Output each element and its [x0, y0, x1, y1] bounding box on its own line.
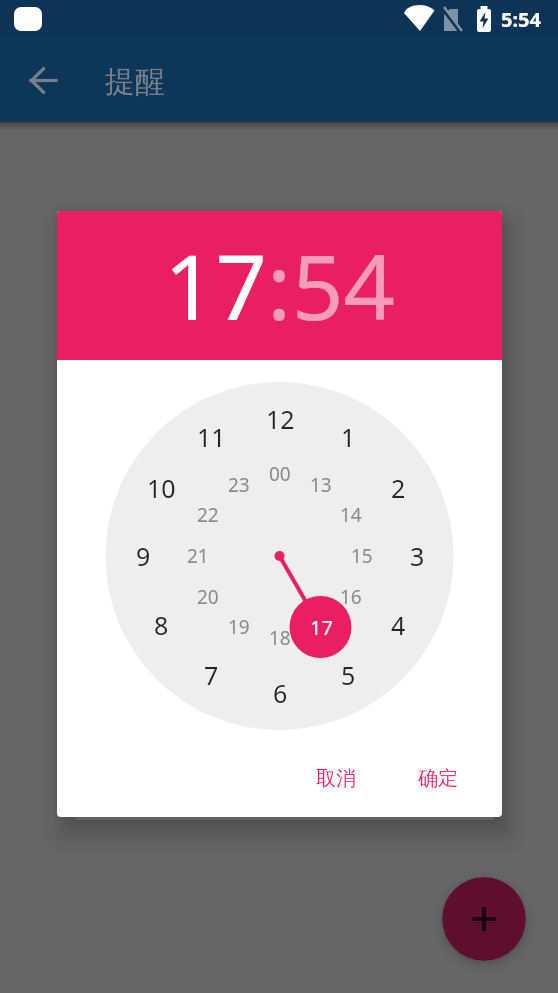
staticText: 21: [187, 543, 209, 569]
staticText: 1: [341, 420, 356, 454]
button[interactable]: [20, 58, 68, 106]
staticText: 4: [391, 608, 406, 642]
staticText: 6: [273, 676, 288, 710]
staticText: 16: [340, 584, 362, 610]
staticText: 7: [204, 658, 219, 692]
staticText: 5: [341, 658, 356, 692]
staticText: 19: [228, 614, 250, 640]
staticText: 2: [391, 471, 406, 505]
staticText: 10: [147, 471, 176, 505]
staticText: 3: [410, 539, 425, 573]
button[interactable]: 确定: [400, 754, 476, 803]
staticText: 取消: [316, 766, 356, 791]
button[interactable]: [442, 877, 526, 961]
staticText: 22: [197, 502, 219, 528]
staticText: 14: [340, 502, 362, 528]
staticText: 8: [154, 608, 169, 642]
staticText: 18: [269, 625, 291, 651]
staticText: 提醒: [105, 63, 165, 101]
button[interactable]: 取消: [298, 754, 374, 803]
staticText: 17: [310, 614, 333, 641]
staticText: 23: [228, 472, 250, 498]
staticText: 15: [351, 543, 373, 569]
staticText: 54: [292, 224, 395, 347]
staticText: 13: [310, 472, 332, 498]
staticText: 12: [266, 402, 295, 436]
staticText: 20: [197, 584, 219, 610]
staticText: 17: [164, 224, 267, 347]
staticText: 确定: [418, 766, 458, 791]
staticText: 00: [269, 461, 291, 487]
staticText: 5:54: [501, 6, 541, 33]
staticText: 11: [197, 420, 226, 454]
staticText: :: [267, 224, 292, 347]
staticText: 9: [136, 539, 151, 573]
